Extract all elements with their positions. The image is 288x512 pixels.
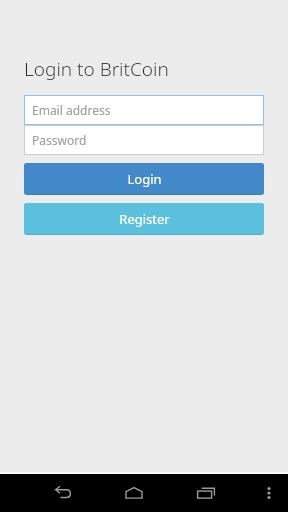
staticText: Email address — [32, 102, 111, 118]
staticText: Password — [32, 132, 87, 148]
staticText: Register — [119, 210, 170, 228]
button[interactable]: Register — [24, 203, 264, 235]
button[interactable]: Recent apps — [184, 474, 228, 512]
button[interactable]: Email address — [24, 95, 264, 125]
button[interactable]: Login — [24, 163, 264, 195]
staticText: Login — [127, 170, 162, 188]
button[interactable]: Password — [24, 125, 264, 155]
button[interactable]: Home — [112, 474, 156, 512]
staticText: Login to BritCoin — [24, 56, 169, 82]
button[interactable]: More options — [256, 474, 282, 512]
button[interactable]: Back — [40, 474, 84, 512]
